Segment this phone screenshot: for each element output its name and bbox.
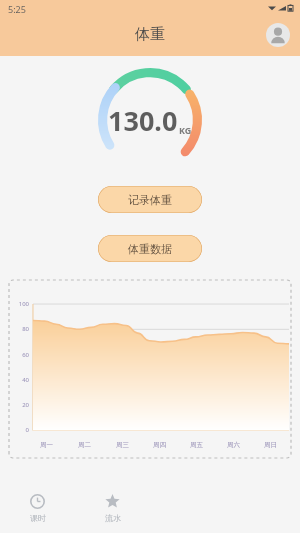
staticText: 周六 [227,441,240,449]
staticText: 80 [9,325,29,333]
staticText: 40 [9,376,29,384]
button[interactable]: 记录体重 [98,186,202,213]
staticText: 记录体重 [128,193,172,207]
button[interactable]: 课时 [0,483,75,533]
staticText: 周三 [116,441,129,449]
staticText: 流水 [105,513,121,523]
button[interactable]: Profile [266,23,290,47]
staticText: 60 [9,351,29,359]
button[interactable]: 体重数据 [98,235,202,262]
staticText: 周四 [153,441,166,449]
staticText: 周一 [40,441,53,449]
staticText: 周五 [190,441,203,449]
staticText: 周日 [264,441,277,449]
staticText: 130.0 [108,102,178,139]
staticText: 0 [9,426,29,434]
staticText: 体重 [135,25,165,44]
staticText: 课时 [30,513,46,523]
staticText: KG [179,124,192,136]
staticText: 体重数据 [128,242,172,256]
staticText: 100 [9,300,29,308]
staticText: 20 [9,401,29,409]
staticText: 5:25 [8,3,26,15]
button[interactable]: 流水 [75,483,150,533]
staticText: 周二 [78,441,91,449]
